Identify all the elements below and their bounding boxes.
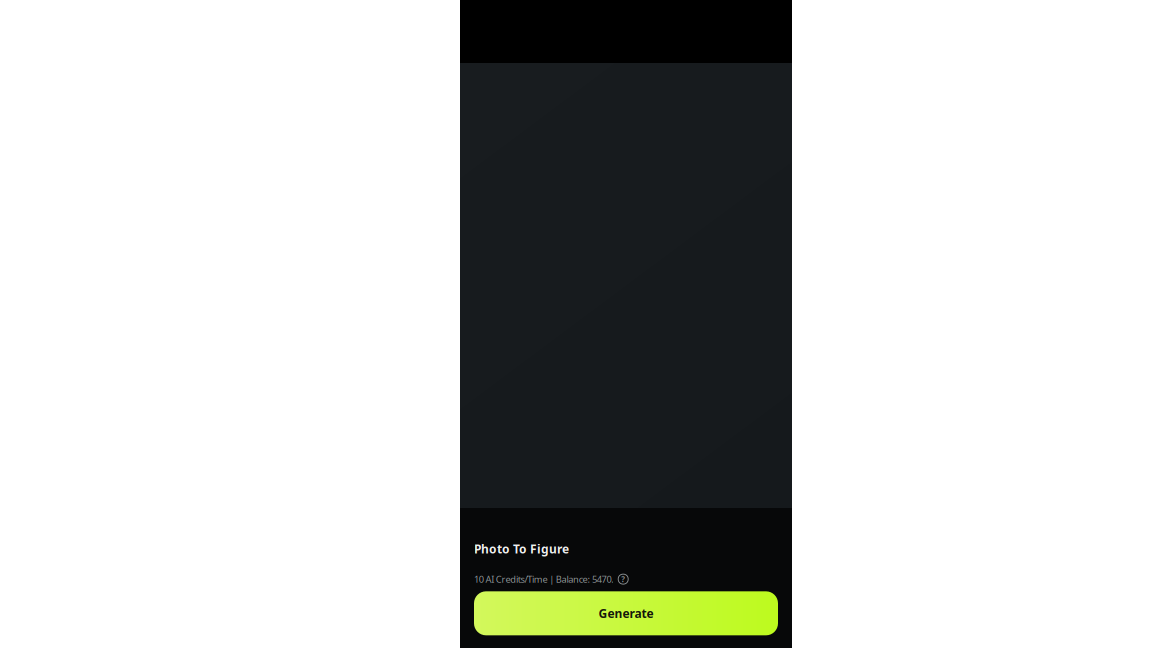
button[interactable]: About AI credits [618, 574, 628, 584]
staticText: ? [621, 574, 625, 584]
button[interactable]: Generate [474, 591, 778, 635]
staticText: 10 AI Credits/Time | Balance: 5470. [474, 573, 614, 585]
staticText: Generate [598, 605, 653, 621]
staticText: Photo To Figure [474, 541, 569, 557]
